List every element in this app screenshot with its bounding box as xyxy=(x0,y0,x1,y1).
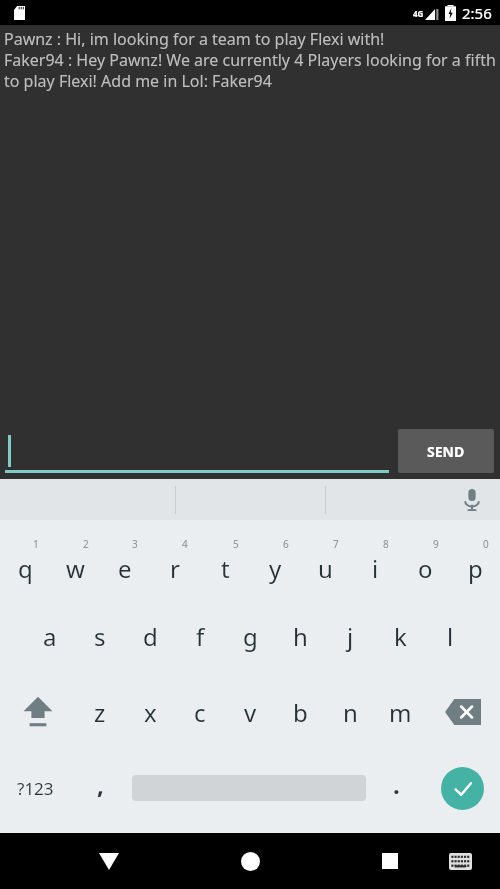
button[interactable]: 6 xyxy=(250,524,300,598)
button[interactable]: g xyxy=(225,598,275,674)
button[interactable]: SEND xyxy=(398,429,494,473)
button[interactable]: a xyxy=(25,598,75,674)
staticText: o xyxy=(418,552,433,585)
staticText: s xyxy=(94,620,106,653)
staticText: SEND xyxy=(427,442,465,461)
button[interactable]: 1 xyxy=(0,524,50,598)
button[interactable]: Home xyxy=(226,837,274,885)
staticText: q xyxy=(18,552,33,585)
button[interactable]: Shift xyxy=(0,674,75,750)
staticText: c xyxy=(194,696,206,729)
button[interactable]: l xyxy=(425,598,475,674)
button[interactable]: Switch keyboard xyxy=(442,843,478,879)
button[interactable]: Enter xyxy=(424,750,500,826)
staticText: e xyxy=(118,552,132,585)
button[interactable]: 4 xyxy=(150,524,200,598)
staticText: y xyxy=(269,552,282,585)
staticText: a xyxy=(43,620,57,653)
staticText: 8 xyxy=(383,537,389,551)
staticText: l xyxy=(447,620,454,653)
staticText: h xyxy=(293,620,308,653)
staticText: t xyxy=(221,552,230,585)
button[interactable]: k xyxy=(375,598,425,674)
staticText: w xyxy=(66,552,85,585)
staticText: 2:56 xyxy=(462,3,492,23)
staticText: , xyxy=(97,768,104,801)
staticText: 5 xyxy=(233,537,239,551)
staticText: p xyxy=(468,552,483,585)
button[interactable] xyxy=(5,429,389,473)
staticText: j xyxy=(347,620,354,653)
button[interactable]: Backspace xyxy=(425,674,500,750)
button[interactable]: ?123 xyxy=(0,750,70,826)
staticText: 9 xyxy=(433,537,439,551)
staticText: z xyxy=(94,696,106,729)
button[interactable]: v xyxy=(225,674,275,750)
button[interactable]: , xyxy=(70,750,130,826)
button[interactable]: x xyxy=(125,674,175,750)
button[interactable]: n xyxy=(325,674,375,750)
button[interactable]: 8 xyxy=(350,524,400,598)
staticText: 4G xyxy=(413,8,424,19)
staticText: d xyxy=(143,620,158,653)
staticText: 3 xyxy=(132,537,138,551)
staticText: 0 xyxy=(483,537,489,551)
button[interactable]: b xyxy=(275,674,325,750)
button[interactable]: f xyxy=(175,598,225,674)
staticText: . xyxy=(393,768,400,801)
staticText: ?123 xyxy=(17,777,54,800)
staticText: 1 xyxy=(33,537,39,551)
button[interactable]: d xyxy=(125,598,175,674)
staticText: f xyxy=(196,620,205,653)
button[interactable]: h xyxy=(275,598,325,674)
button[interactable]: 0 xyxy=(450,524,500,598)
staticText: v xyxy=(244,696,257,729)
staticText: 4 xyxy=(182,537,188,551)
staticText: g xyxy=(243,620,258,653)
staticText: 7 xyxy=(333,537,339,551)
staticText: 2 xyxy=(83,537,89,551)
staticText: r xyxy=(170,552,180,585)
staticText: x xyxy=(144,696,157,729)
button[interactable]: 5 xyxy=(200,524,250,598)
staticText: i xyxy=(372,552,379,585)
staticText: n xyxy=(343,696,358,729)
button[interactable]: 3 xyxy=(100,524,150,598)
button[interactable]: s xyxy=(75,598,125,674)
button[interactable]: 9 xyxy=(400,524,450,598)
button[interactable]: z xyxy=(75,674,125,750)
staticText: m xyxy=(389,696,412,729)
staticText: Pawnz : Hi, im looking for a team to pla… xyxy=(4,28,498,92)
staticText: 6 xyxy=(283,537,289,551)
button[interactable]: Recent apps xyxy=(366,837,414,885)
staticText: u xyxy=(318,552,333,585)
button[interactable]: j xyxy=(325,598,375,674)
button[interactable]: Voice input xyxy=(452,480,492,520)
button[interactable]: m xyxy=(375,674,425,750)
button[interactable]: 2 xyxy=(50,524,100,598)
button[interactable]: c xyxy=(175,674,225,750)
button[interactable]: . xyxy=(368,750,424,826)
staticText: b xyxy=(293,696,308,729)
button[interactable]: Back xyxy=(85,837,133,885)
button[interactable]: 7 xyxy=(300,524,350,598)
staticText: k xyxy=(394,620,407,653)
